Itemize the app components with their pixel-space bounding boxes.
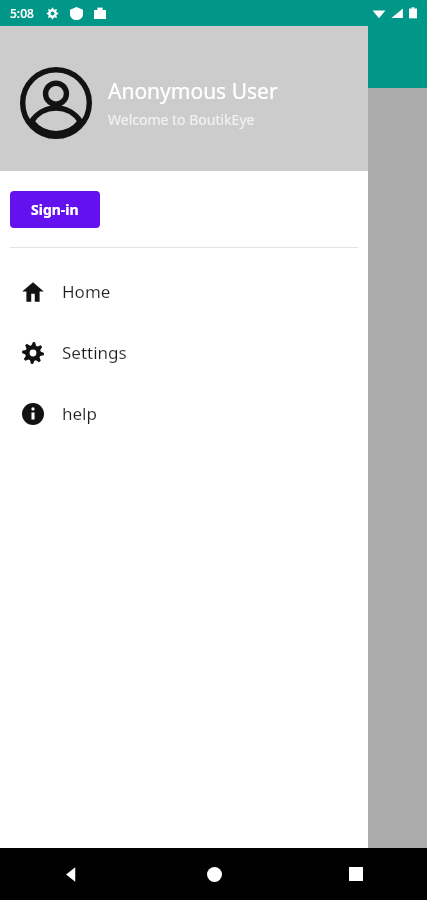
button[interactable]: Settings — [0, 322, 368, 383]
staticText: help — [62, 402, 97, 425]
button[interactable]: Home — [143, 848, 285, 900]
staticText: Home — [62, 280, 111, 303]
staticText: Welcome to BoutikEye — [108, 110, 255, 129]
button[interactable]: Recent apps — [285, 848, 427, 900]
button[interactable]: Sign-in — [10, 191, 100, 228]
button[interactable]: Home — [0, 261, 368, 322]
staticText: Anonymous User — [108, 77, 278, 106]
button[interactable]: Back — [0, 848, 143, 900]
staticText: 5:08 — [10, 5, 34, 21]
staticText: Settings — [62, 341, 127, 364]
button[interactable]: help — [0, 383, 368, 444]
staticText: Sign-in — [31, 200, 79, 219]
